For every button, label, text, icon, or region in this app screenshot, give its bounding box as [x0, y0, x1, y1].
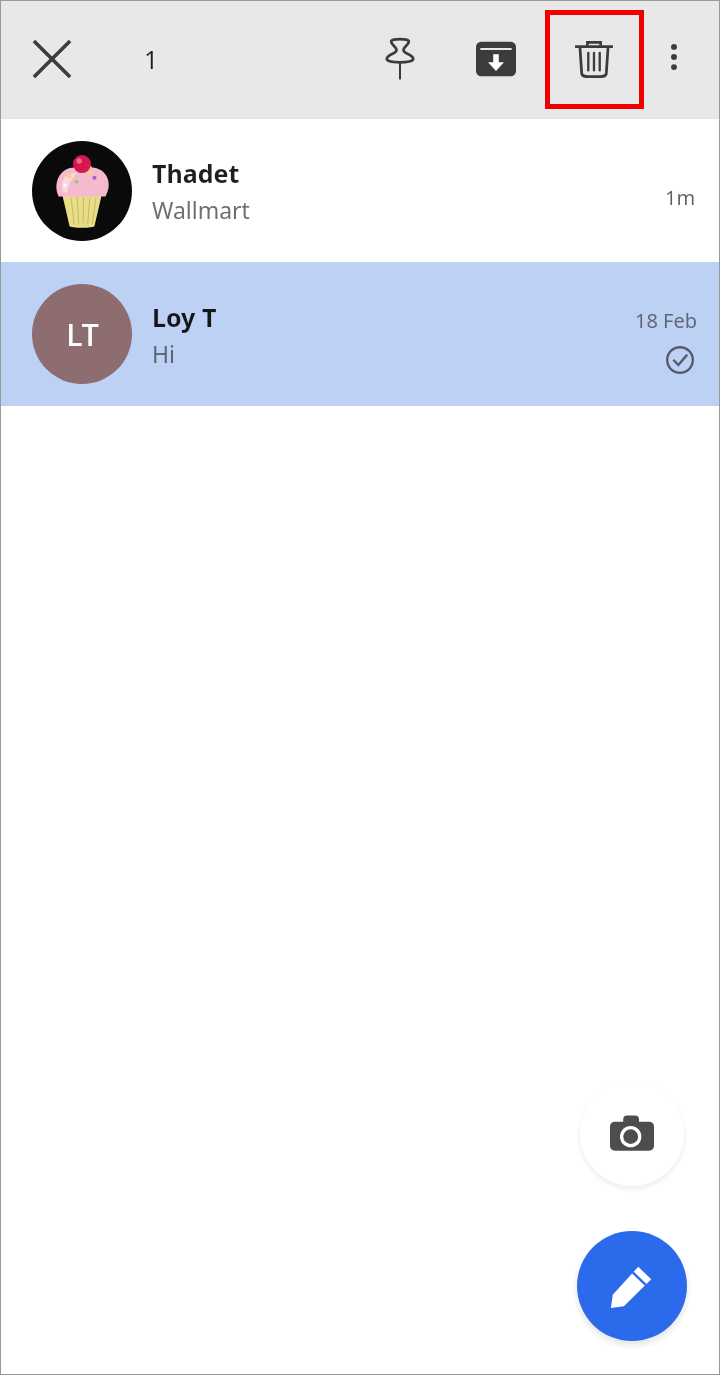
staticText: 1m: [665, 184, 696, 211]
button[interactable]: More options: [644, 27, 704, 87]
button[interactable]: Compose: [577, 1231, 687, 1341]
button[interactable]: Close: [20, 27, 84, 91]
button[interactable]: Camera: [580, 1082, 684, 1186]
staticText: 1: [144, 42, 159, 76]
staticText: Hi: [152, 338, 175, 369]
staticText: Loy T: [152, 300, 217, 334]
button[interactable]: LT: [0, 262, 720, 406]
button[interactable]: Thadet: [0, 119, 720, 262]
button[interactable]: Delete: [562, 27, 626, 91]
staticText: 18 Feb: [635, 307, 698, 334]
staticText: LT: [66, 314, 99, 355]
button[interactable]: Archive: [464, 27, 528, 91]
button[interactable]: Pin: [368, 27, 432, 91]
staticText: Thadet: [152, 156, 240, 190]
staticText: Wallmart: [152, 194, 250, 225]
